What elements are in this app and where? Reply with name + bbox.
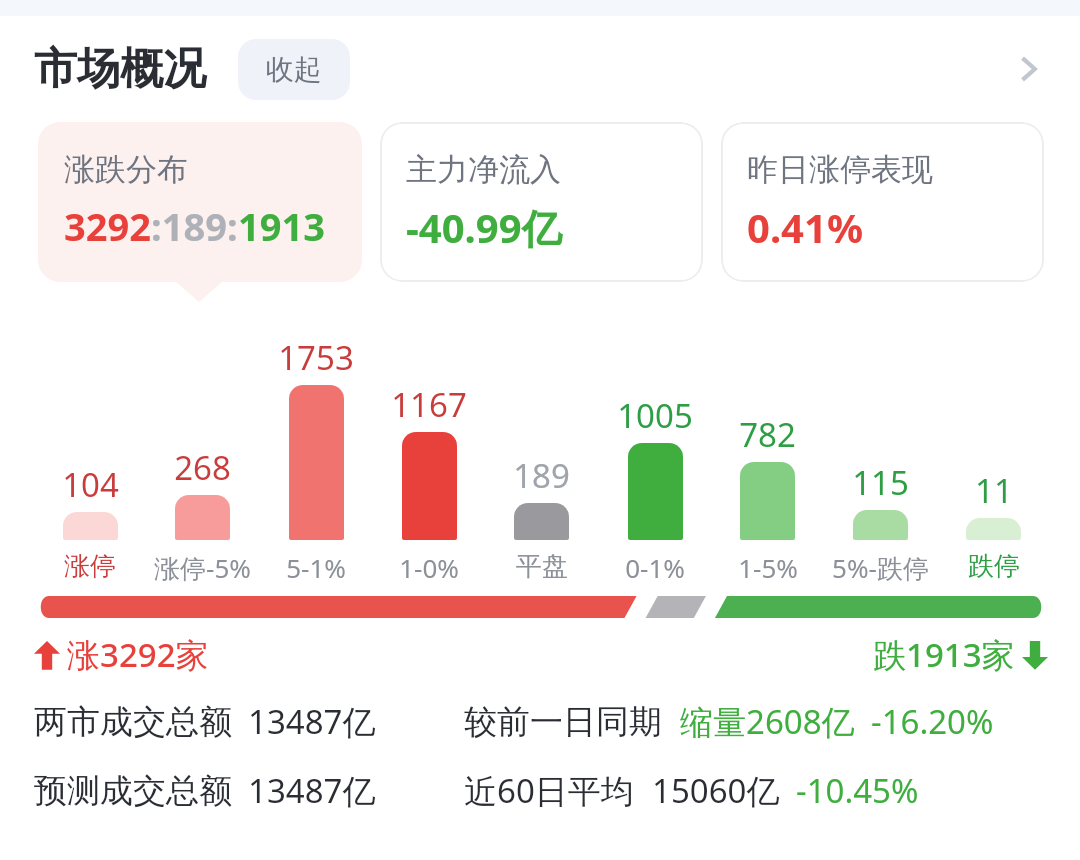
staticText: 涨停 — [64, 550, 116, 582]
staticText: 11 — [975, 468, 1013, 513]
staticText: 13487亿 — [248, 768, 376, 813]
staticText: -40.99亿 — [406, 200, 562, 255]
staticText: 1-0% — [399, 550, 459, 582]
staticText: 782 — [739, 412, 796, 457]
staticText: 268 — [174, 445, 231, 490]
staticText: 涨3292家 — [67, 632, 209, 677]
staticText: :189: — [151, 200, 238, 252]
staticText: 昨日涨停表现 — [747, 150, 933, 189]
button[interactable]: 主力净流入 — [380, 122, 703, 282]
staticText: -16.20% — [871, 699, 994, 744]
button[interactable]: 市场概况 — [0, 16, 1080, 122]
staticText: 主力净流入 — [406, 150, 561, 189]
staticText: 5-1% — [286, 550, 346, 582]
staticText: 1-5% — [738, 550, 798, 582]
staticText: 5%-跌停 — [832, 550, 929, 582]
staticText: 1167 — [391, 382, 467, 427]
staticText: 3292 — [64, 200, 151, 252]
staticText: 115 — [852, 460, 909, 505]
staticText: 104 — [62, 462, 119, 507]
staticText: 0.41% — [747, 200, 863, 254]
staticText: 平盘 — [516, 550, 568, 582]
staticText: 市场概况 — [34, 42, 206, 96]
button[interactable]: 展开更多 — [1002, 43, 1054, 95]
button[interactable]: 涨跌分布 — [38, 122, 362, 282]
staticText: 涨跌分布 — [64, 150, 188, 189]
staticText: 0-1% — [625, 550, 685, 582]
staticText: 涨停-5% — [154, 550, 251, 582]
staticText: 189 — [513, 453, 570, 498]
staticText: 1005 — [617, 393, 693, 438]
button[interactable]: 收起 — [238, 39, 350, 100]
staticText: 跌停 — [968, 550, 1020, 582]
staticText: 1753 — [278, 335, 354, 380]
staticText: 13487亿 — [248, 699, 376, 744]
staticText: 15060亿 — [652, 768, 780, 813]
staticText: 两市成交总额 — [34, 701, 232, 743]
staticText: 较前一日同期 — [464, 701, 662, 743]
staticText: 缩量2608亿 — [680, 699, 855, 744]
staticText: 跌1913家 — [873, 632, 1015, 677]
staticText: 1913 — [238, 200, 325, 252]
staticText: -10.45% — [796, 768, 919, 813]
staticText: 收起 — [266, 52, 322, 87]
staticText: 近60日平均 — [464, 768, 634, 813]
button[interactable]: 昨日涨停表现 — [721, 122, 1044, 282]
staticText: 预测成交总额 — [34, 770, 232, 812]
